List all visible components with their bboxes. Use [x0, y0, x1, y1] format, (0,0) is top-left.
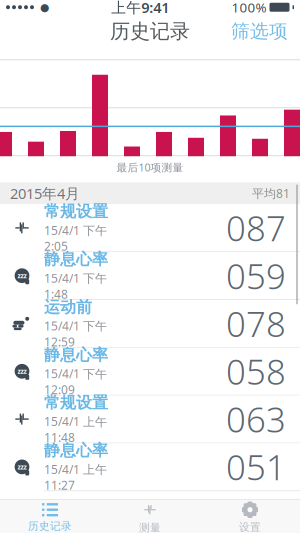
button[interactable]: 测量	[100, 500, 200, 533]
staticText: 058	[226, 348, 286, 394]
staticText: 平均81	[252, 185, 290, 201]
staticText: 051	[226, 444, 286, 490]
button[interactable]: 常规设置	[0, 204, 300, 252]
staticText: 常规设置	[44, 393, 108, 412]
staticText: 历史记录	[110, 19, 190, 43]
staticText: 最后10项测量	[116, 160, 183, 174]
button[interactable]: zzz	[0, 252, 300, 300]
staticText: 087	[226, 205, 286, 251]
staticText: 静息心率	[44, 345, 108, 365]
staticText: 历史记录	[28, 519, 72, 533]
staticText: 设置	[239, 521, 261, 533]
staticText: 运动前	[44, 297, 92, 317]
staticText: 15/4/1 下午12:09	[44, 366, 107, 398]
staticText: 15/4/1 下午1:48	[44, 270, 107, 302]
staticText: 059	[226, 253, 286, 299]
button[interactable]: 设置	[200, 500, 300, 533]
staticText: 筛选项	[231, 20, 288, 43]
staticText: 静息心率	[44, 249, 108, 269]
button[interactable]: 筛选项	[223, 17, 296, 45]
staticText: 100%	[231, 0, 266, 16]
staticText: 078	[226, 300, 286, 346]
staticText: 测量	[139, 521, 161, 533]
button[interactable]: zzz	[0, 443, 300, 491]
button[interactable]: 历史记录	[0, 500, 100, 533]
button[interactable]: 常规设置	[0, 396, 300, 443]
staticText: 15/4/1 上午11:48	[44, 413, 107, 445]
staticText: ●	[40, 1, 49, 13]
staticText: zzz	[17, 462, 26, 471]
staticText: 063	[226, 396, 286, 442]
staticText: 上午9:41	[111, 0, 169, 17]
staticText: 15/4/1 上午11:27	[44, 461, 107, 493]
staticText: 15/4/1 下午12:59	[44, 318, 107, 350]
staticText: 15/4/1 下午2:05	[44, 222, 107, 254]
button[interactable]: 运动前	[0, 300, 300, 348]
staticText: 静息心率	[44, 441, 108, 460]
button[interactable]: zzz	[0, 348, 300, 396]
staticText: zzz	[17, 367, 26, 376]
staticText: zzz	[17, 271, 26, 280]
staticText: 常规设置	[44, 202, 108, 221]
staticText: 2015年4月	[10, 184, 80, 203]
